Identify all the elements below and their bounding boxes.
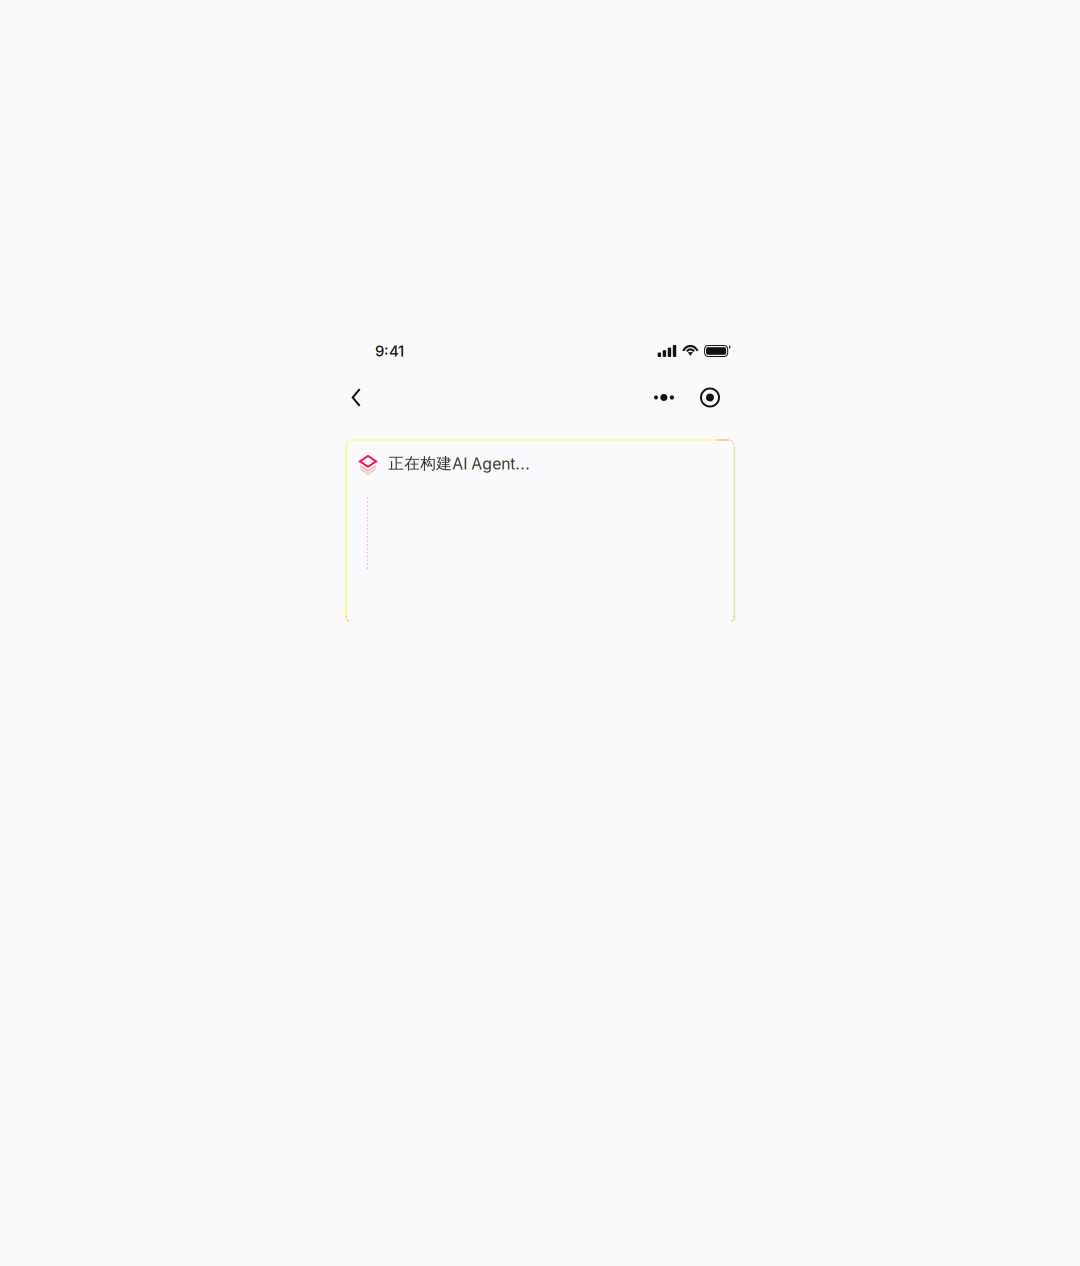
button[interactable]: More options [648, 380, 680, 415]
button[interactable]: Voice mode [694, 380, 726, 415]
staticText: 正在构建AI Agent... [388, 454, 530, 473]
button[interactable]: Back [347, 380, 375, 415]
staticText: 9:41 [375, 342, 404, 360]
button[interactable]: 正在构建AI Agent... [345, 439, 734, 622]
